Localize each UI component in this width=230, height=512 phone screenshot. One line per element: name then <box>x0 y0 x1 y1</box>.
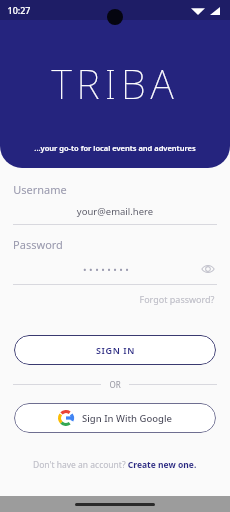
button[interactable]: Forgot password? <box>137 291 217 307</box>
staticText: Password <box>13 237 63 252</box>
button[interactable]: SIGN IN <box>14 335 216 365</box>
staticText: ...your go-to for local events and adven… <box>34 143 196 153</box>
staticText: Forgot password? <box>139 293 215 305</box>
staticText: Username <box>13 182 67 197</box>
staticText: TRIBA <box>51 56 179 110</box>
button[interactable]: Sign In With Google <box>14 403 216 433</box>
staticText: Don't have an account? Create new one. <box>33 459 197 471</box>
staticText: • • • • • • • • <box>13 263 199 276</box>
button[interactable]: Don't have an account? Create new one. <box>29 456 201 474</box>
button[interactable]: Show password <box>199 260 217 278</box>
staticText: 10:27 <box>7 4 31 16</box>
staticText: Sign In With Google <box>82 412 172 425</box>
staticText: SIGN IN <box>96 344 135 356</box>
staticText: your@email.here <box>13 205 217 218</box>
staticText: OR <box>109 379 121 390</box>
